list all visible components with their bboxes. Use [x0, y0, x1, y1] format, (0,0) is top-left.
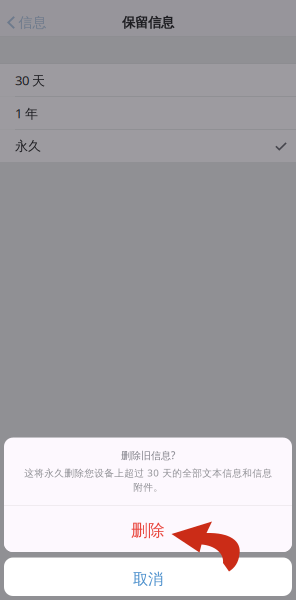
staticText: 永久	[15, 138, 41, 154]
staticText: 1 年	[15, 104, 38, 122]
staticText: 删除旧信息?	[121, 449, 175, 462]
button[interactable]: 1 年	[0, 97, 296, 129]
staticText: 删除	[131, 520, 165, 541]
button[interactable]: 永久	[0, 130, 296, 162]
button[interactable]: 信息	[0, 8, 56, 36]
button[interactable]: 30 天	[0, 64, 296, 96]
staticText: 30 天	[15, 71, 45, 89]
staticText: 信息	[18, 14, 46, 31]
button[interactable]: 删除	[4, 506, 292, 552]
button[interactable]: 取消	[0, 557, 296, 596]
staticText: 保留信息	[122, 14, 174, 31]
staticText: 这将永久删除您设备上超过 30 天的全部文本信息和信息 附件。	[24, 466, 272, 493]
staticText: 取消	[133, 570, 163, 589]
